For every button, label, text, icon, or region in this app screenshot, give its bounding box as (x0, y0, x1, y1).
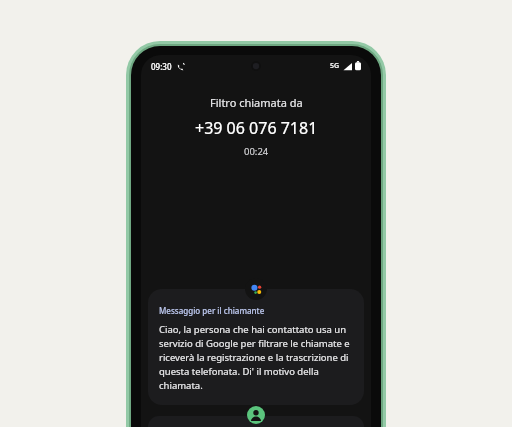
button[interactable] (148, 416, 364, 427)
staticText: +39 06 076 7181 (195, 117, 318, 139)
other: Caller (247, 406, 265, 424)
staticText: Messaggio per il chiamante (159, 305, 265, 316)
staticText: 09:30 (151, 61, 172, 72)
button[interactable]: Messaggio per il chiamante (148, 289, 364, 405)
staticText: 5G (330, 61, 340, 71)
staticText: Filtro chiamata da (210, 95, 303, 110)
button[interactable]: Google Assistant (245, 278, 267, 300)
staticText: Ciao, la persona che hai contattato usa … (159, 323, 353, 392)
staticText: 00:24 (244, 145, 269, 158)
